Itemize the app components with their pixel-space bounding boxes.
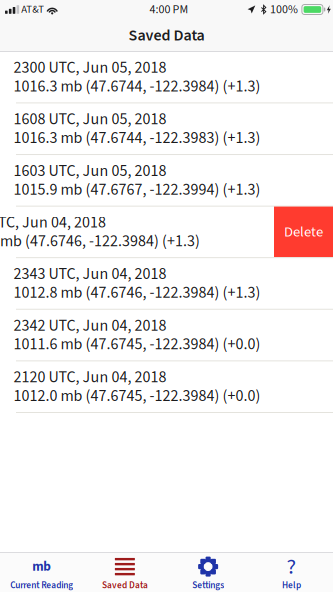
button[interactable]: 2300 UTC, Jun 05, 2018 [16,52,333,102]
button[interactable]: Settings [166,551,250,592]
staticText: Current Reading [10,579,73,592]
staticText: 1015.9 mb (47.6767, -122.3994) (+1.3) [13,180,260,199]
staticText: 1011.6 mb (47.6745, -122.3984) (+0.0) [13,335,260,354]
button[interactable]: 2120 UTC, Jun 04, 2018 [16,361,333,412]
staticText: 100% [270,1,298,18]
staticText: AT&T [21,2,44,17]
staticText: 1012.9 mb (47.6746, -122.3984) (+1.3) [0,232,200,251]
staticText: Settings [192,579,224,592]
staticText: mb [32,557,51,576]
staticText: 2344 UTC, Jun 04, 2018 [0,213,106,232]
staticText: Saved Data [102,579,148,592]
button[interactable]: Delete [274,207,333,257]
staticText: ? [286,550,296,583]
button[interactable]: mb [0,551,83,592]
staticText: 2120 UTC, Jun 04, 2018 [13,368,166,387]
staticText: Delete [284,221,323,242]
button[interactable]: 1603 UTC, Jun 05, 2018 [16,155,333,206]
staticText: 1012.0 mb (47.6745, -122.3984) (+0.0) [13,387,260,405]
button[interactable]: 1608 UTC, Jun 05, 2018 [16,103,333,154]
staticText: 1012.8 mb (47.6746, -122.3984) (+1.3) [13,283,260,302]
staticText: 2343 UTC, Jun 04, 2018 [13,265,166,283]
button[interactable]: 2342 UTC, Jun 04, 2018 [16,310,333,360]
staticText: Help [282,579,301,592]
staticText: 4:00 PM [149,1,188,18]
staticText: 1016.3 mb (47.6744, -122.3984) (+1.3) [13,77,260,96]
staticText: Saved Data [128,24,204,47]
button[interactable]: Saved Data [83,551,166,592]
staticText: 1608 UTC, Jun 05, 2018 [13,110,166,129]
button[interactable]: ? [250,551,333,592]
staticText: 1603 UTC, Jun 05, 2018 [13,162,166,180]
button[interactable]: 2343 UTC, Jun 04, 2018 [16,258,333,309]
staticText: 2342 UTC, Jun 04, 2018 [13,316,166,335]
staticText: 2300 UTC, Jun 05, 2018 [13,58,166,77]
staticText: 1016.3 mb (47.6744, -122.3983) (+1.3) [13,129,260,147]
